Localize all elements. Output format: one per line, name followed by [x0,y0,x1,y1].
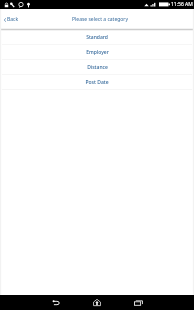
staticText: Standard [86,34,108,41]
button[interactable]: Employer [0,45,194,60]
button[interactable]: Distance [0,60,194,75]
button[interactable]: Standard [0,30,194,45]
staticText: 11:56 AM [171,1,193,8]
button[interactable]: Post Date [0,75,194,90]
staticText: Please select a category [72,16,128,23]
staticText: Back [7,16,19,23]
staticText: Post Date [85,79,109,86]
button[interactable]: Back [47,295,65,310]
button[interactable]: Recent apps [129,295,147,310]
staticText: Employer [86,49,109,56]
button[interactable]: Back [0,12,24,27]
staticText: Distance [87,64,108,71]
button[interactable]: Home [88,295,106,310]
